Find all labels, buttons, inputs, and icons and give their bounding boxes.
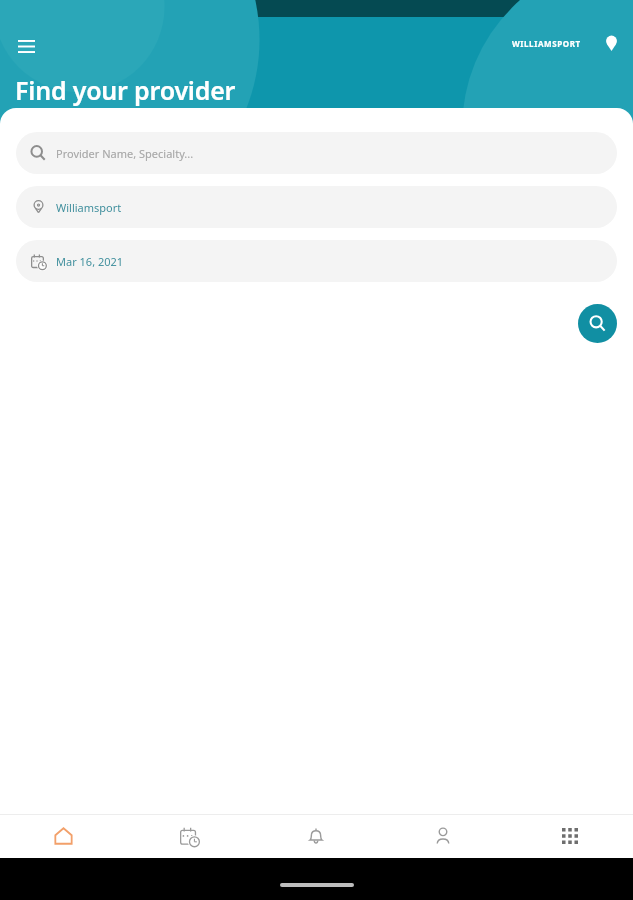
button[interactable]: Notifications [252, 814, 379, 858]
staticText: Williamsport [56, 200, 122, 215]
staticText: Mar 16, 2021 [56, 254, 124, 269]
other: Location [599, 31, 623, 55]
button[interactable]: Search [578, 304, 617, 343]
button[interactable]: Profile [379, 814, 506, 858]
button[interactable]: Menu [10, 30, 42, 62]
staticText: WILLIAMSPORT [512, 38, 581, 49]
button[interactable]: Appointments [126, 814, 252, 858]
staticText: Find your provider [15, 73, 236, 107]
button[interactable]: Williamsport [16, 186, 617, 228]
button[interactable]: Provider Name, Specialty... [16, 132, 617, 174]
button[interactable]: More [506, 814, 633, 858]
staticText: Provider Name, Specialty... [56, 146, 194, 161]
button[interactable]: Mar 16, 2021 [16, 240, 617, 282]
button[interactable]: Home [0, 814, 126, 858]
button[interactable]: WILLIAMSPORT [512, 31, 623, 55]
